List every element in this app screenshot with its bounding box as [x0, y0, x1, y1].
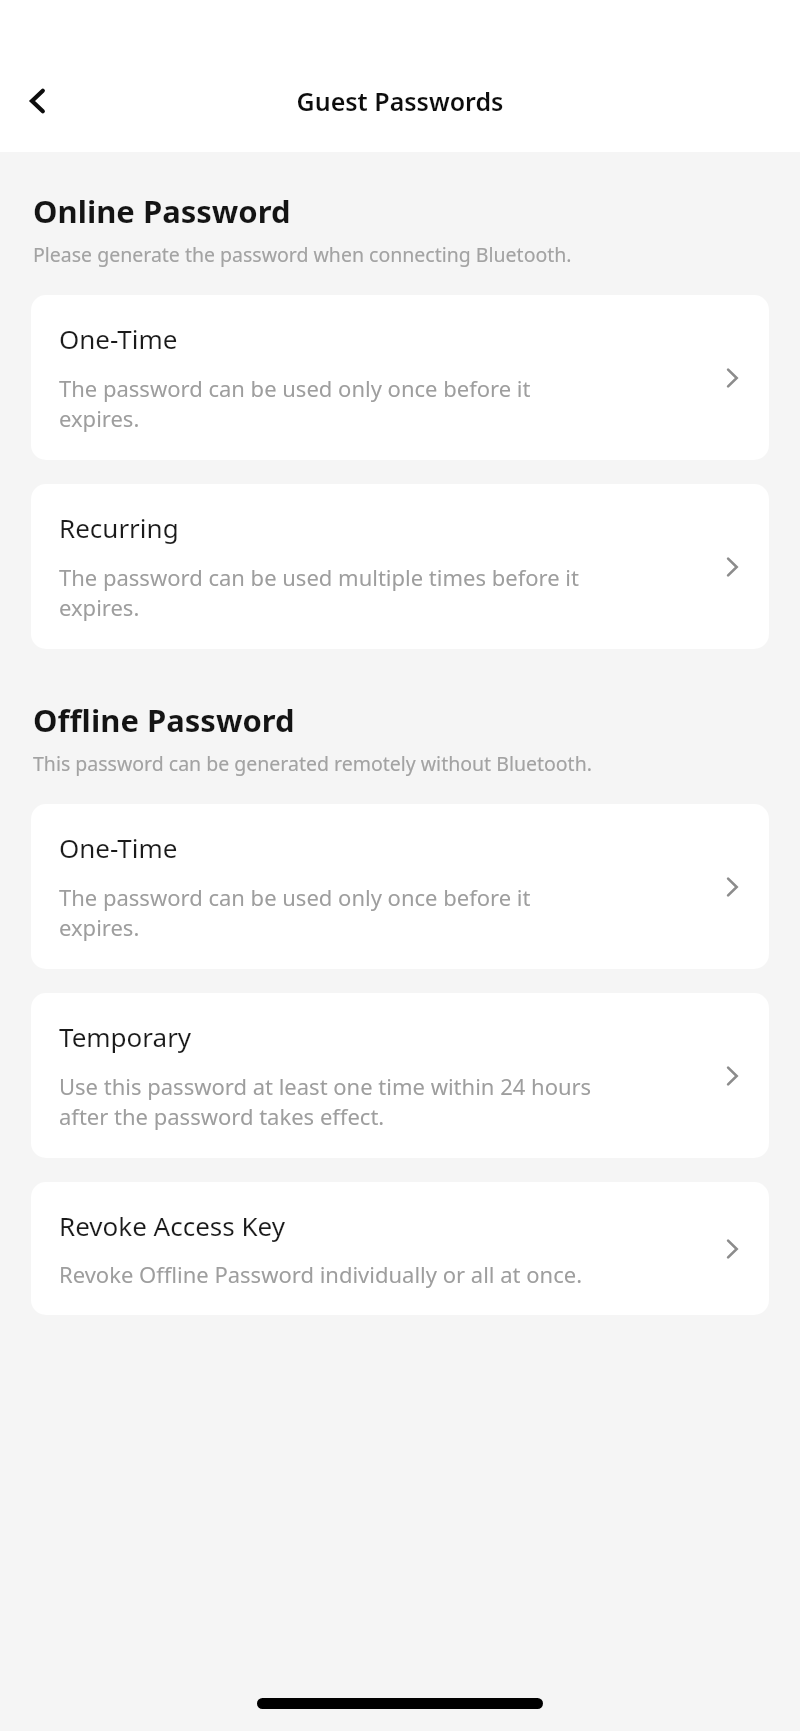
button[interactable]: Recurring	[31, 484, 769, 649]
staticText: Please generate the password when connec…	[33, 241, 572, 268]
button[interactable]: Revoke Access Key	[31, 1182, 769, 1315]
staticText: Online Password	[33, 190, 291, 232]
staticText: One-Time	[59, 830, 178, 865]
staticText: Recurring	[59, 510, 179, 545]
button[interactable]: Temporary	[31, 993, 769, 1158]
button[interactable]: One-Time	[31, 295, 769, 460]
staticText: The password can be used only once befor…	[59, 373, 531, 434]
button[interactable]: One-Time	[31, 804, 769, 969]
staticText: Use this password at least one time with…	[59, 1071, 592, 1132]
staticText: Offline Password	[33, 699, 295, 741]
staticText: One-Time	[59, 321, 178, 356]
staticText: This password can be generated remotely …	[33, 750, 592, 777]
staticText: Revoke Offline Password individually or …	[59, 1259, 583, 1289]
staticText: Guest Passwords	[0, 84, 800, 118]
staticText: Revoke Access Key	[59, 1208, 285, 1243]
staticText: The password can be used only once befor…	[59, 882, 531, 943]
staticText: Temporary	[59, 1019, 192, 1054]
button[interactable]: Back	[10, 73, 66, 129]
staticText: The password can be used multiple times …	[59, 562, 579, 623]
